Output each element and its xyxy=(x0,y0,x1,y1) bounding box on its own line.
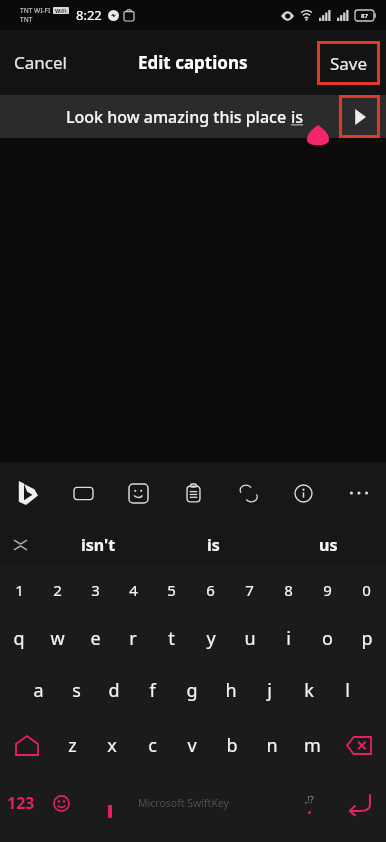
staticText: k xyxy=(304,678,314,703)
button[interactable]: g xyxy=(172,663,211,718)
staticText: 87 xyxy=(361,12,368,20)
staticText: f xyxy=(149,678,156,703)
staticText: Save xyxy=(330,52,368,75)
button[interactable]: Space xyxy=(80,773,286,833)
button[interactable]: Translate xyxy=(221,462,276,524)
button[interactable]: 3 xyxy=(76,566,114,613)
staticText: 2 xyxy=(53,580,62,600)
button[interactable]: 4 xyxy=(114,566,152,613)
staticText: 3 xyxy=(91,580,100,600)
staticText: ,!? xyxy=(305,793,314,805)
button[interactable]: w xyxy=(38,613,76,663)
button[interactable]: Bing xyxy=(0,462,56,524)
button[interactable]: l xyxy=(328,663,367,718)
staticText: c xyxy=(148,733,157,758)
staticText: y xyxy=(206,626,216,651)
staticText: 7 xyxy=(245,580,254,600)
button[interactable]: Sticker xyxy=(111,462,166,524)
button[interactable]: More xyxy=(331,462,386,524)
button[interactable]: q xyxy=(0,613,38,663)
button[interactable]: i xyxy=(269,613,308,663)
staticText: m xyxy=(304,733,321,758)
button[interactable]: 5 xyxy=(152,566,191,613)
button[interactable]: j xyxy=(250,663,289,718)
button[interactable]: e xyxy=(76,613,114,663)
button[interactable]: y xyxy=(191,613,230,663)
staticText: Microsoft SwiftKey xyxy=(138,796,229,810)
button[interactable]: a xyxy=(19,663,57,718)
staticText: p xyxy=(361,626,373,651)
staticText: is xyxy=(207,534,220,556)
staticText: v xyxy=(187,733,197,758)
button[interactable]: z xyxy=(53,718,92,773)
staticText: e xyxy=(90,626,101,651)
button[interactable]: ,!? xyxy=(286,773,332,833)
button[interactable]: s xyxy=(57,663,95,718)
button[interactable]: o xyxy=(308,613,347,663)
staticText: t xyxy=(168,626,175,651)
staticText: i xyxy=(286,626,291,651)
staticText: us xyxy=(319,534,338,556)
staticText: Edit captions xyxy=(138,51,248,74)
staticText: w xyxy=(50,626,65,651)
button[interactable]: 2 xyxy=(38,566,76,613)
button[interactable]: v xyxy=(172,718,212,773)
button[interactable]: x xyxy=(92,718,132,773)
button[interactable]: c xyxy=(132,718,172,773)
staticText: WiFi xyxy=(55,7,67,14)
staticText: h xyxy=(225,678,237,703)
button[interactable]: Expand xyxy=(0,525,40,565)
button[interactable]: 123 xyxy=(0,773,42,833)
button[interactable]: t xyxy=(152,613,191,663)
button[interactable]: n xyxy=(252,718,292,773)
button[interactable]: Enter xyxy=(332,773,386,833)
staticText: Cancel xyxy=(14,51,67,74)
button[interactable]: m xyxy=(292,718,332,773)
button[interactable]: k xyxy=(289,663,328,718)
staticText: 6 xyxy=(206,580,215,600)
button[interactable]: 0 xyxy=(347,566,386,613)
staticText: u xyxy=(244,626,256,651)
staticText: TNT WI-FI xyxy=(20,6,51,15)
button[interactable]: Save xyxy=(317,41,380,85)
button[interactable]: us xyxy=(271,524,386,566)
staticText: is xyxy=(291,106,304,128)
button[interactable]: p xyxy=(347,613,386,663)
staticText: d xyxy=(108,678,120,703)
button[interactable]: isn't xyxy=(40,524,156,566)
button[interactable]: Clipboard xyxy=(166,462,221,524)
button[interactable]: Cancel xyxy=(0,41,81,84)
staticText: x xyxy=(107,733,117,758)
staticText: 0 xyxy=(362,580,371,600)
staticText: n xyxy=(266,733,278,758)
button[interactable]: d xyxy=(95,663,133,718)
staticText: TNT xyxy=(20,15,33,24)
button[interactable]: f xyxy=(133,663,172,718)
staticText: Look how amazing this place xyxy=(66,106,291,128)
staticText: 123 xyxy=(7,792,35,814)
button[interactable]: is xyxy=(156,524,271,566)
button[interactable]: u xyxy=(230,613,269,663)
button[interactable]: GIF xyxy=(56,462,111,524)
staticText: z xyxy=(68,733,77,758)
button[interactable]: 6 xyxy=(191,566,230,613)
button[interactable]: 8 xyxy=(269,566,308,613)
staticText: l xyxy=(345,678,350,703)
button[interactable]: Info xyxy=(276,462,331,524)
button[interactable]: Backspace xyxy=(332,718,386,773)
staticText: g xyxy=(186,678,198,703)
button[interactable]: Play xyxy=(339,95,380,138)
button[interactable]: h xyxy=(211,663,250,718)
staticText: 4 xyxy=(129,580,138,600)
staticText: 8 xyxy=(284,580,293,600)
button[interactable]: b xyxy=(212,718,252,773)
staticText: isn't xyxy=(81,534,116,556)
button[interactable]: 9 xyxy=(308,566,347,613)
button[interactable]: 7 xyxy=(230,566,269,613)
button[interactable]: 1 xyxy=(0,566,38,613)
staticText: j xyxy=(267,678,272,703)
button[interactable]: Shift xyxy=(0,718,53,773)
staticText: b xyxy=(226,733,238,758)
button[interactable]: Emoji xyxy=(42,773,80,833)
button[interactable]: r xyxy=(114,613,152,663)
